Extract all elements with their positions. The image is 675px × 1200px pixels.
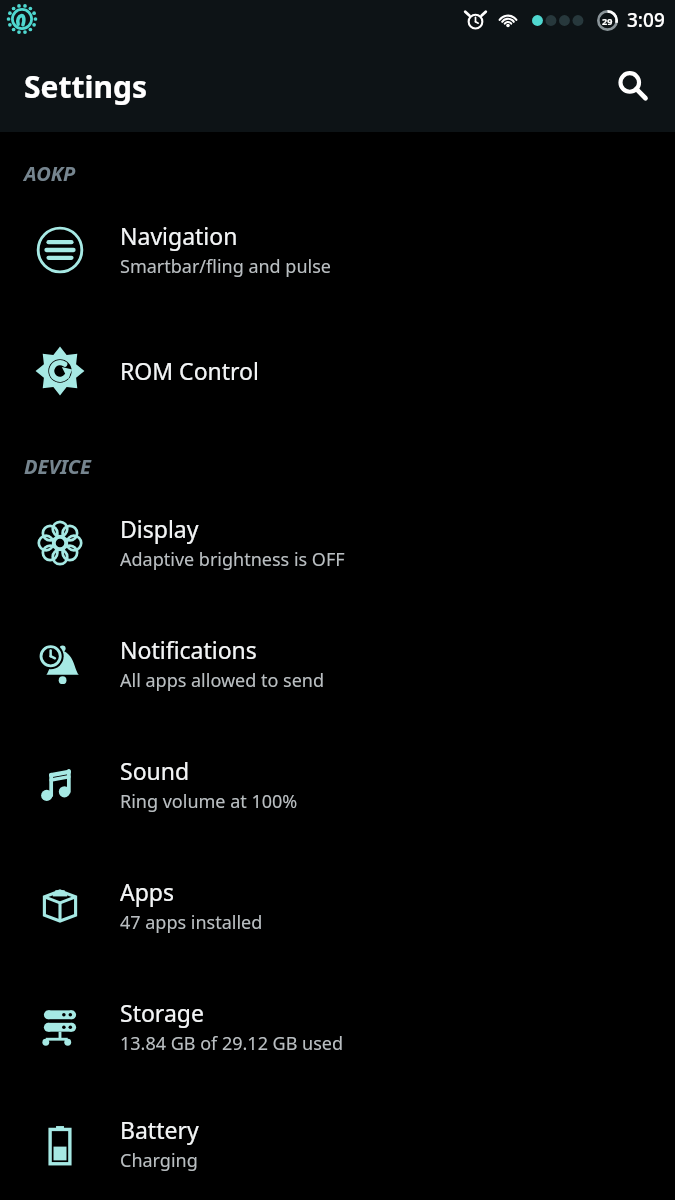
staticText: AOKP [24, 160, 76, 187]
button[interactable]: Battery [0, 1087, 675, 1200]
staticText: DEVICE [24, 453, 91, 480]
staticText: Charging [120, 1148, 198, 1173]
button[interactable]: ROM Control [0, 310, 675, 431]
button[interactable]: Storage [0, 966, 675, 1087]
staticText: Sound [120, 755, 190, 786]
staticText: Navigation [120, 220, 238, 251]
staticText: 29 [602, 15, 613, 27]
staticText: Notifications [120, 634, 257, 665]
button[interactable]: Sound [0, 724, 675, 845]
button[interactable]: Apps [0, 845, 675, 966]
staticText: Display [120, 513, 199, 544]
staticText: Settings [24, 66, 147, 107]
button[interactable]: Search [603, 57, 661, 115]
staticText: All apps allowed to send [120, 668, 325, 693]
staticText: Adaptive brightness is OFF [120, 547, 345, 572]
staticText: Storage [120, 997, 204, 1028]
staticText: 47 apps installed [120, 910, 263, 935]
button[interactable]: Notifications [0, 603, 675, 724]
staticText: 3:09 [627, 7, 665, 33]
staticText: ROM Control [120, 355, 259, 386]
staticText: 13.84 GB of 29.12 GB used [120, 1031, 344, 1056]
staticText: Ring volume at 100% [120, 789, 298, 814]
staticText: Smartbar/fling and pulse [120, 254, 331, 279]
staticText: Battery [120, 1114, 199, 1145]
button[interactable]: Display [0, 482, 675, 603]
staticText: Apps [120, 876, 175, 907]
button[interactable]: Navigation [0, 189, 675, 310]
